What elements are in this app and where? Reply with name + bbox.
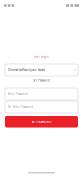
staticText: v xyxy=(74,68,75,72)
staticText: Re Enter Password xyxy=(8,105,33,109)
staticText: User Login xyxy=(34,55,49,58)
staticText: SET PASSWORD xyxy=(31,120,51,123)
button[interactable]: SET PASSWORD xyxy=(5,116,78,127)
staticText: Enter Password xyxy=(8,92,28,96)
staticText: Dharmshala/Nandgaon Swami xyxy=(8,68,45,72)
staticText: Set Password xyxy=(33,79,50,82)
staticText: Select Zone xyxy=(9,63,17,65)
